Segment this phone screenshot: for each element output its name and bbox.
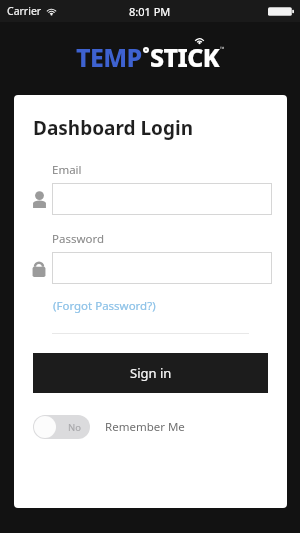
staticText: TEMP [76,40,142,74]
staticText: Carrier [7,4,42,18]
staticText: ™ [220,45,225,53]
staticText: No [68,421,81,434]
staticText: (Forgot Password?) [53,298,156,314]
staticText: Dashboard Login [33,115,194,141]
staticText: 8:01 PM [129,4,171,19]
button[interactable]: Remember Me toggle, off [33,415,90,439]
button[interactable]: Password [52,252,272,284]
staticText: Remember Me [105,419,185,435]
button[interactable]: Sign in [33,353,268,393]
button[interactable]: Email [52,183,272,215]
staticText: STICK [150,40,220,74]
staticText: Email [52,162,82,178]
staticText: Sign in [130,364,172,382]
button[interactable]: (Forgot Password?) [52,296,157,316]
staticText: Password [52,231,105,247]
